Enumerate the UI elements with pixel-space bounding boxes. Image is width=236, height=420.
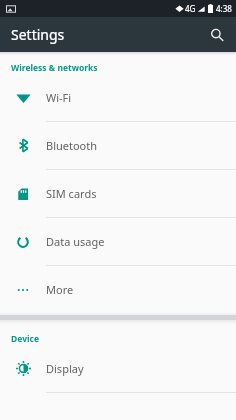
staticText: Wireless & networks: [11, 62, 98, 74]
staticText: SIM cards: [46, 186, 97, 201]
button[interactable]: SIM cards: [0, 170, 236, 217]
staticText: Bluetooth: [46, 138, 98, 153]
button[interactable]: Display: [0, 345, 236, 392]
staticText: Wi-Fi: [46, 90, 72, 105]
staticText: 4G: [185, 3, 196, 14]
staticText: Display: [46, 361, 84, 376]
staticText: Data usage: [46, 234, 105, 249]
button[interactable]: More: [0, 266, 236, 313]
button[interactable]: Bluetooth: [0, 122, 236, 169]
staticText: Settings: [11, 25, 65, 44]
staticText: More: [46, 282, 74, 297]
staticText: Device: [11, 333, 39, 345]
staticText: 4:38: [216, 3, 232, 14]
button[interactable]: Wi-Fi: [0, 74, 236, 121]
button[interactable]: Data usage: [0, 218, 236, 265]
button[interactable]: Search: [202, 20, 232, 50]
